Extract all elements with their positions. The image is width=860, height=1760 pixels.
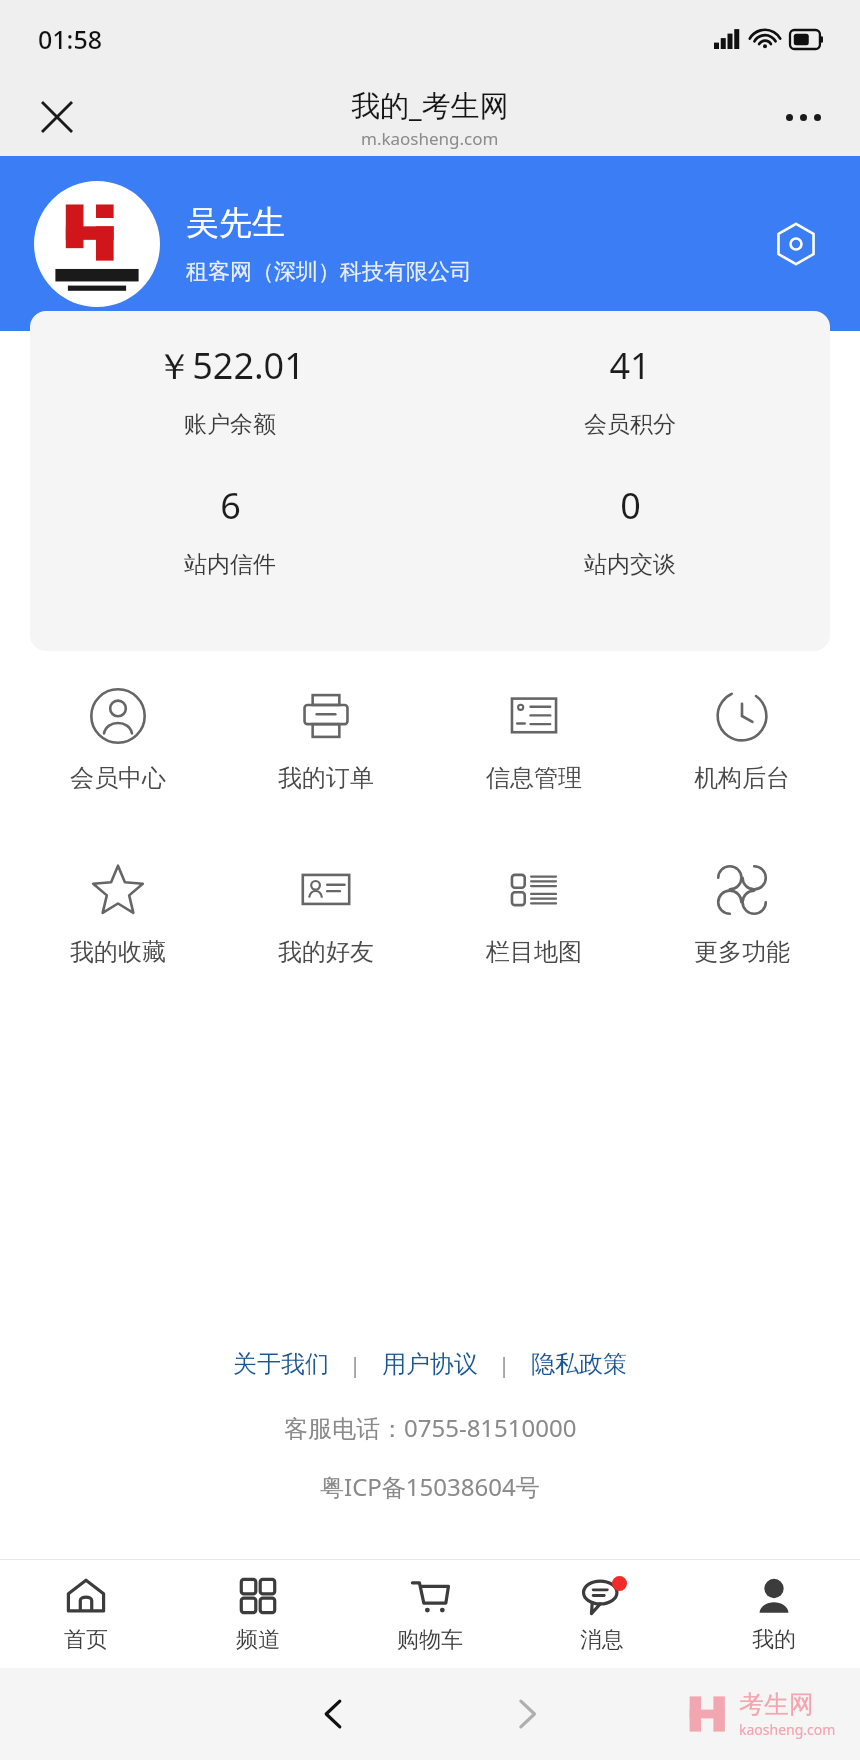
button[interactable]: 用户协议 xyxy=(378,1345,482,1383)
staticText: 我的_考生网 xyxy=(351,85,509,125)
button[interactable]: 首页 xyxy=(0,1560,172,1668)
button[interactable]: 会员中心 xyxy=(14,681,222,799)
button[interactable]: 更多功能 xyxy=(638,855,846,973)
staticText: 站内交谈 xyxy=(584,550,676,579)
button[interactable]: 我的收藏 xyxy=(14,855,222,973)
staticText: 账户余额 xyxy=(184,410,276,439)
staticText: 站内信件 xyxy=(184,550,276,579)
staticText: kaosheng.com xyxy=(739,1720,836,1739)
staticText: 机构后台 xyxy=(694,763,790,793)
staticText: 信息管理 xyxy=(486,763,582,793)
button[interactable]: Avatar xyxy=(34,181,160,307)
staticText: 购物车 xyxy=(397,1626,463,1654)
button[interactable]: 我的 xyxy=(688,1560,860,1668)
staticText: 会员积分 xyxy=(584,410,676,439)
staticText: 更多功能 xyxy=(694,937,790,967)
button[interactable]: 关于我们 xyxy=(229,1345,333,1383)
staticText: 粤ICP备15038604号 xyxy=(320,1470,540,1503)
staticText: 考生网 xyxy=(739,1689,814,1720)
button[interactable]: ￥522.01 xyxy=(30,341,430,439)
staticText: 频道 xyxy=(236,1626,280,1654)
staticText: | xyxy=(349,1349,362,1379)
staticText: 我的收藏 xyxy=(70,937,166,967)
button[interactable]: Forward xyxy=(491,1678,563,1750)
button[interactable]: 6 xyxy=(30,481,430,579)
staticText: 会员中心 xyxy=(70,763,166,793)
staticText: | xyxy=(498,1349,511,1379)
button[interactable]: 信息管理 xyxy=(430,681,638,799)
button[interactable]: 隐私政策 xyxy=(527,1345,631,1383)
staticText: 41 xyxy=(609,341,651,390)
button[interactable]: Back xyxy=(297,1678,369,1750)
staticText: 0 xyxy=(620,481,641,530)
staticText: 吴先生 xyxy=(186,202,285,244)
staticText: ￥522.01 xyxy=(156,341,305,390)
staticText: 我的 xyxy=(752,1626,796,1654)
staticText: 关于我们 xyxy=(233,1349,329,1379)
button[interactable]: 我的订单 xyxy=(222,681,430,799)
staticText: 我的订单 xyxy=(278,763,374,793)
button[interactable]: More options xyxy=(772,86,834,148)
button[interactable]: 栏目地图 xyxy=(430,855,638,973)
staticText: 隐私政策 xyxy=(531,1349,627,1379)
button[interactable]: 我的好友 xyxy=(222,855,430,973)
button[interactable]: 消息 xyxy=(516,1560,688,1668)
staticText: 首页 xyxy=(64,1626,108,1654)
staticText: 客服电话：0755-81510000 xyxy=(284,1411,577,1444)
staticText: 我的好友 xyxy=(278,937,374,967)
button[interactable]: 41 xyxy=(430,341,830,439)
staticText: 消息 xyxy=(580,1626,624,1654)
staticText: 用户协议 xyxy=(382,1349,478,1379)
button[interactable]: 购物车 xyxy=(344,1560,516,1668)
staticText: 栏目地图 xyxy=(486,937,582,967)
button[interactable]: Settings xyxy=(766,214,826,274)
button[interactable]: Close xyxy=(26,86,88,148)
button[interactable]: 0 xyxy=(430,481,830,579)
staticText: 01:58 xyxy=(38,22,103,56)
button[interactable]: 机构后台 xyxy=(638,681,846,799)
staticText: 6 xyxy=(220,481,241,530)
button[interactable]: 频道 xyxy=(172,1560,344,1668)
staticText: 租客网（深圳）科技有限公司 xyxy=(186,258,472,286)
staticText: m.kaosheng.com xyxy=(361,127,499,150)
